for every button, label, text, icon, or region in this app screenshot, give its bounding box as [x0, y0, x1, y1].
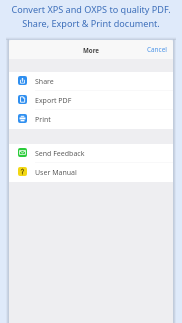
staticText: Print [35, 115, 51, 125]
button[interactable]: Send Feedback [9, 144, 173, 163]
staticText: Send Feedback [35, 149, 85, 159]
button[interactable]: Export PDF [9, 91, 173, 110]
staticText: Cancel [147, 45, 167, 54]
button[interactable]: Print [9, 110, 173, 129]
staticText: Export PDF [35, 96, 72, 106]
staticText: More [83, 46, 100, 54]
button[interactable]: Share [9, 72, 173, 91]
button[interactable]: Cancel [141, 42, 173, 57]
button[interactable]: User Manual [9, 163, 173, 182]
staticText: Convert XPS and OXPS to quality PDF. [11, 3, 171, 15]
staticText: User Manual [35, 168, 77, 178]
staticText: Share [35, 77, 54, 87]
staticText: Share, Export & Print document. [22, 17, 160, 29]
